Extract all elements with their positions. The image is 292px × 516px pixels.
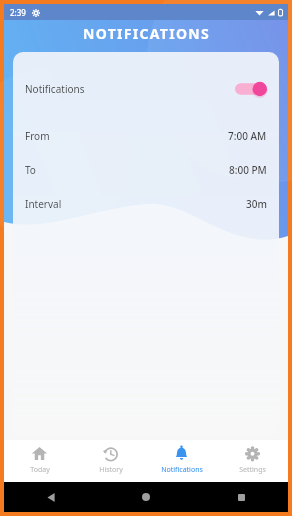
button[interactable]: Interval bbox=[13, 187, 279, 221]
staticText: Today bbox=[30, 465, 50, 475]
button[interactable]: Notifications bbox=[146, 440, 217, 482]
other: Settings bbox=[244, 445, 261, 462]
staticText: Notifications bbox=[25, 82, 235, 96]
staticText: NOTIFICATIONS bbox=[83, 24, 210, 43]
button[interactable]: Back bbox=[40, 486, 62, 508]
button[interactable]: Notifications bbox=[13, 74, 279, 104]
button[interactable]: Recent apps bbox=[230, 486, 252, 508]
button[interactable]: To bbox=[13, 153, 279, 187]
staticText: Notifications bbox=[161, 465, 203, 475]
staticText: To bbox=[25, 163, 229, 177]
staticText: 2:39 bbox=[10, 7, 26, 18]
button[interactable]: Home bbox=[135, 486, 157, 508]
button[interactable]: From bbox=[13, 119, 279, 153]
other: History bbox=[102, 445, 119, 462]
button[interactable]: Settings bbox=[217, 440, 288, 482]
button[interactable]: History bbox=[75, 440, 146, 482]
staticText: 7:00 AM bbox=[228, 129, 267, 143]
staticText: From bbox=[25, 129, 228, 143]
staticText: 8:00 PM bbox=[229, 163, 267, 177]
button[interactable]: Today bbox=[4, 440, 75, 482]
staticText: 30m bbox=[246, 197, 267, 211]
staticText: Interval bbox=[25, 197, 246, 211]
staticText: Settings bbox=[239, 465, 266, 475]
staticText: History bbox=[99, 465, 123, 475]
other: Today bbox=[31, 445, 48, 462]
other: Notifications bbox=[173, 445, 190, 462]
